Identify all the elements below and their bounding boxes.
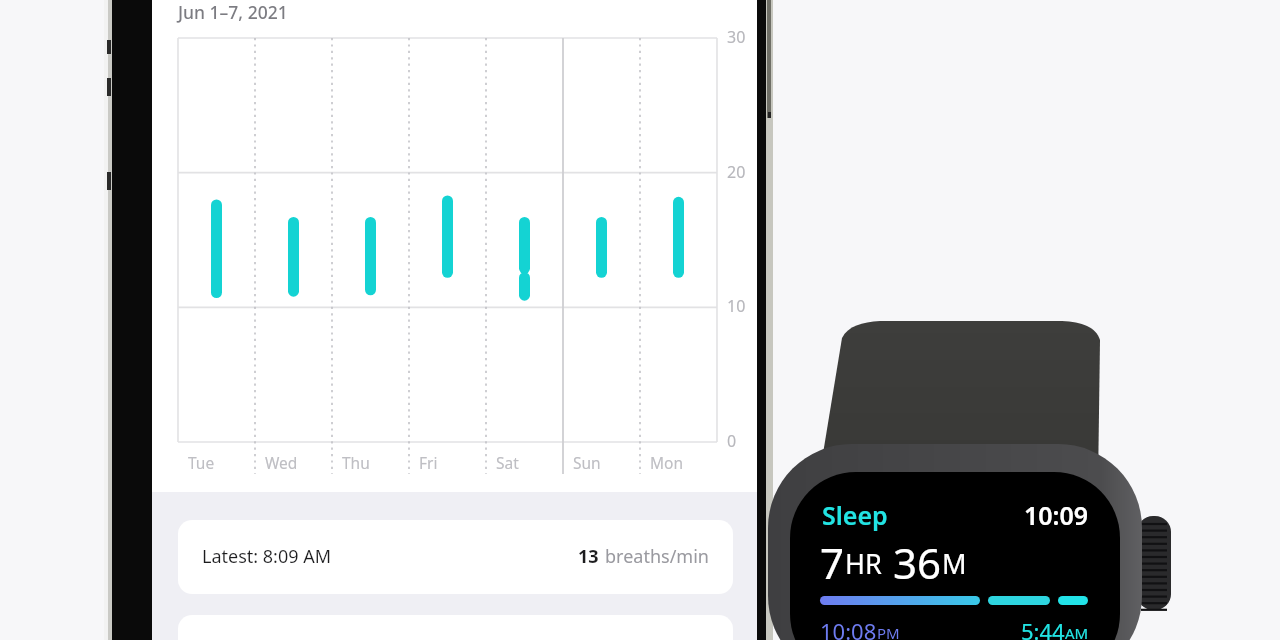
button[interactable]: Sleep and respiratory rate overview — [0, 0, 1280, 640]
